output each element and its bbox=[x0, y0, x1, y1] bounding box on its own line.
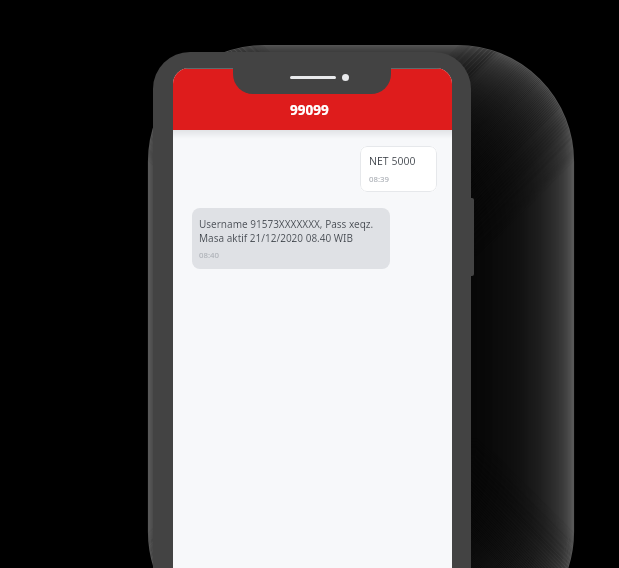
staticText: 08:39 bbox=[369, 174, 389, 185]
staticText: Username 91573XXXXXXX, Pass xeqz. bbox=[199, 217, 374, 231]
staticText: 08:40 bbox=[199, 250, 219, 261]
staticText: NET 5000 bbox=[369, 154, 416, 168]
button[interactable]: Username 91573XXXXXXX, Pass xeqz. bbox=[192, 208, 390, 269]
staticText: Masa aktif 21/12/2020 08.40 WIB bbox=[199, 231, 354, 245]
button[interactable]: 99099 bbox=[173, 68, 452, 130]
staticText: 99099 bbox=[290, 101, 329, 119]
button[interactable]: NET 5000 bbox=[360, 146, 437, 192]
